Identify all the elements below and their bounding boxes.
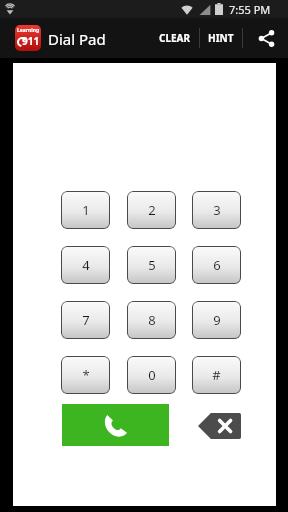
button[interactable]: 2 [127,191,176,229]
staticText: 3 [213,201,221,219]
staticText: * [82,366,90,384]
button[interactable]: 0 [127,356,176,394]
staticText: 8 [148,311,156,329]
button[interactable]: # [192,356,241,394]
button[interactable]: 6 [192,246,241,284]
button[interactable]: CLEAR [152,18,198,58]
staticText: Dial Pad [48,29,106,49]
button[interactable]: HINT [201,18,241,58]
staticText: # [212,366,221,384]
button[interactable]: Call [62,404,169,446]
staticText: 7:55 PM [229,2,271,17]
staticText: 4 [82,256,90,274]
button[interactable]: 4 [61,246,110,284]
staticText: Learning [17,27,40,34]
button[interactable]: 5 [127,246,176,284]
staticText: 2 [148,201,156,219]
button[interactable]: * [61,356,110,394]
staticText: 5 [148,256,156,274]
button[interactable]: 1 [61,191,110,229]
staticText: CLEAR [159,31,191,45]
button[interactable]: 8 [127,301,176,339]
staticText: HINT [208,31,234,45]
staticText: 7 [82,311,90,329]
button[interactable]: Share [245,18,288,58]
staticText: 0 [148,366,156,384]
button[interactable]: 3 [192,191,241,229]
button[interactable]: Delete [198,413,241,439]
button[interactable]: 7 [61,301,110,339]
staticText: 1 [82,201,90,219]
staticText: 911 [22,34,40,48]
staticText: 9 [213,311,221,329]
button[interactable]: 9 [192,301,241,339]
staticText: 6 [213,256,221,274]
